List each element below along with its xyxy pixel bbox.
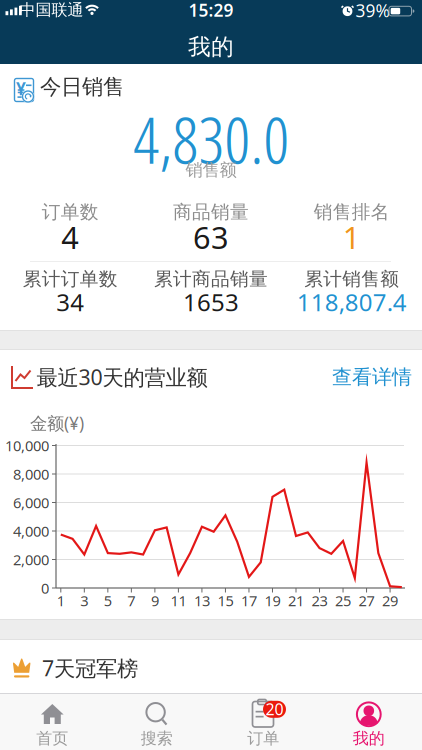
staticText: 2,000	[13, 550, 49, 569]
staticText: 21	[288, 591, 304, 610]
staticText: 7	[127, 591, 135, 610]
staticText: 3	[80, 591, 88, 610]
staticText: 最近30天的营业额	[36, 363, 207, 391]
staticText: 1	[343, 217, 361, 257]
staticText: 1653	[183, 286, 239, 318]
staticText: 7天冠军榜	[42, 654, 138, 682]
staticText: 首页	[36, 729, 68, 748]
staticText: 17	[241, 591, 257, 610]
staticText: 4,000	[13, 521, 49, 541]
staticText: 累计订单数	[23, 267, 118, 290]
staticText: 63	[193, 217, 229, 257]
staticText: 118,807.4	[297, 286, 407, 318]
staticText: 8,000	[13, 464, 49, 484]
staticText: 6,000	[13, 493, 49, 512]
staticText: 中国联通	[19, 0, 83, 20]
staticText: 27	[359, 591, 375, 610]
staticText: 34	[56, 286, 84, 318]
staticText: 销售排名	[314, 200, 390, 223]
staticText: 4	[61, 217, 79, 257]
staticText: 25	[335, 591, 351, 610]
staticText: ¥	[16, 77, 26, 100]
staticText: 15	[217, 591, 233, 610]
staticText: 订单数	[42, 200, 99, 223]
staticText: 今日销售	[40, 74, 124, 100]
staticText: 4,830.0	[133, 95, 289, 183]
button[interactable]: 搜索	[105, 693, 211, 750]
staticText: 累计销售额	[304, 267, 399, 290]
staticText: 9	[151, 591, 159, 610]
staticText: 19	[264, 591, 280, 610]
staticText: 0	[41, 578, 49, 598]
staticText: 累计商品销量	[154, 267, 268, 290]
staticText: 搜索	[141, 729, 173, 748]
staticText: 23	[311, 591, 327, 610]
button[interactable]: 查看详情	[332, 362, 412, 392]
staticText: 15:29	[188, 0, 233, 21]
staticText: 5	[104, 591, 112, 610]
button[interactable]: 我的	[316, 693, 422, 750]
staticText: 销售额	[185, 159, 236, 181]
staticText: 11	[170, 591, 186, 610]
staticText: 13	[194, 591, 210, 610]
staticText: 10,000	[5, 436, 49, 455]
staticText: 商品销量	[173, 200, 249, 223]
staticText: 20	[265, 698, 283, 720]
staticText: 查看详情	[332, 365, 412, 389]
staticText: 29	[382, 591, 398, 610]
staticText: 金额(¥)	[30, 411, 84, 434]
staticText: 我的	[188, 33, 234, 61]
staticText: 1	[57, 591, 65, 610]
staticText: 39%	[355, 0, 389, 22]
button[interactable]: 首页	[0, 693, 105, 750]
staticText: 订单	[247, 729, 279, 748]
staticText: 我的	[353, 729, 385, 748]
button[interactable]: 20	[211, 693, 316, 750]
